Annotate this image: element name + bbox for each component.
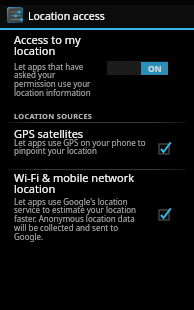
staticText: Location access (28, 9, 105, 23)
staticText: Let apps use GPS on your phone to pinpoi… (14, 137, 148, 156)
staticText: Access to my location (14, 32, 98, 58)
staticText: LOCATION SOURCES (14, 111, 93, 121)
staticText: ON (148, 63, 162, 75)
button[interactable]: Wi-Fi & mobile network location (0, 170, 194, 245)
button[interactable]: GPS satellites (0, 122, 194, 167)
button[interactable]: GPS satellites checkbox (155, 140, 174, 159)
staticText: Wi-Fi & mobile network location (14, 170, 148, 196)
button[interactable]: Access to my location (0, 30, 194, 108)
staticText: GPS satellites (14, 126, 148, 141)
button[interactable]: Location access (0, 5, 194, 28)
button[interactable]: Access to my location switch (107, 61, 168, 75)
button[interactable]: Wi-Fi and mobile network location checkb… (155, 206, 174, 225)
staticText: Let apps that have asked your permission… (14, 61, 98, 98)
staticText: Let apps use Google's location service t… (14, 196, 148, 242)
